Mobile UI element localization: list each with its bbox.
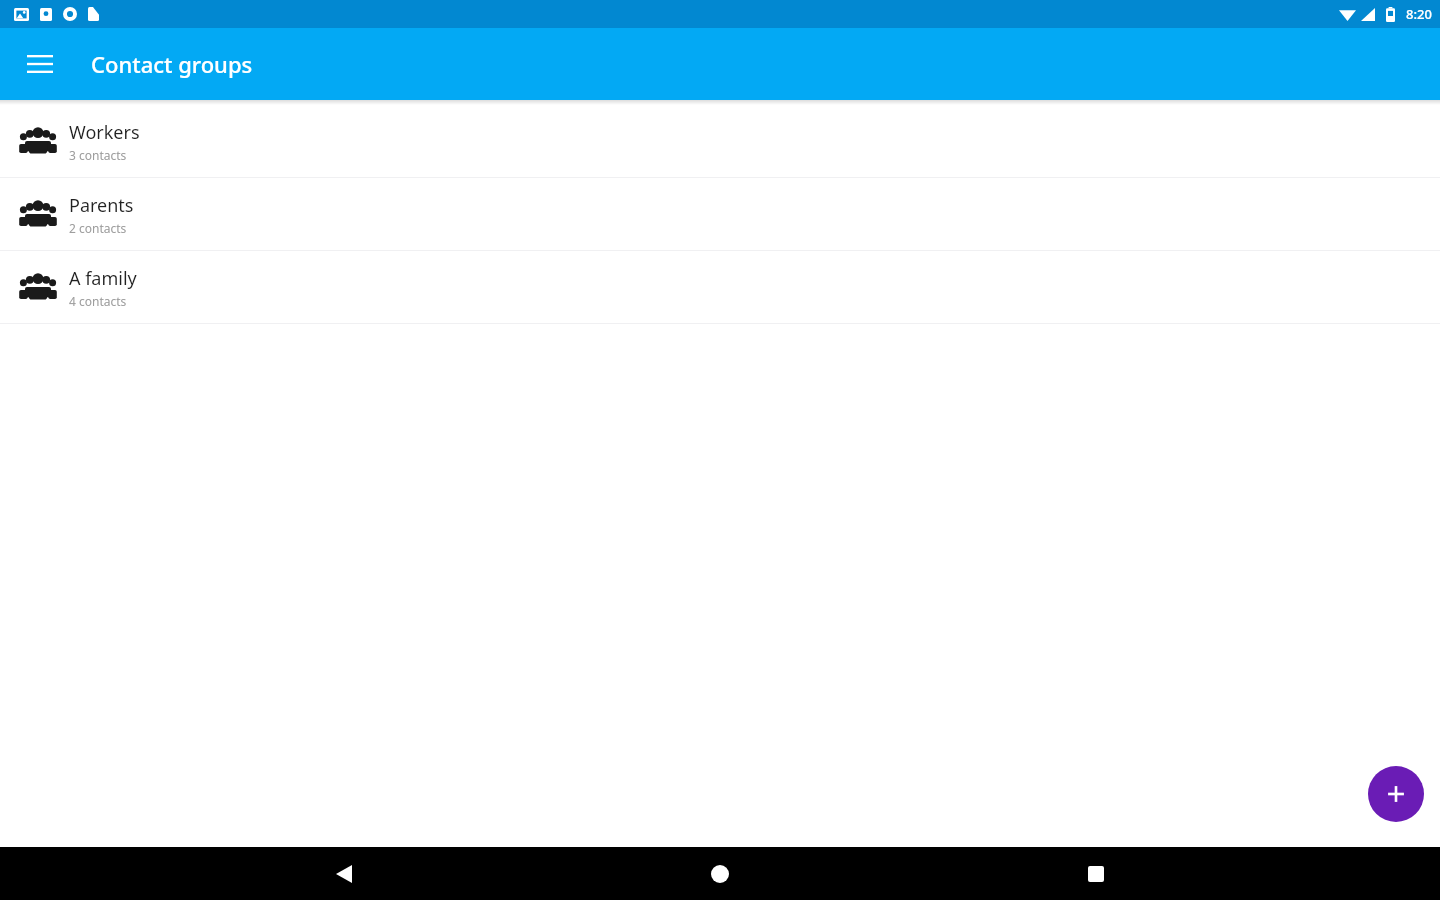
button[interactable]: Back	[312, 847, 376, 900]
staticText: 3 contacts	[69, 147, 127, 163]
button[interactable]: Open navigation menu	[16, 40, 64, 88]
staticText: A family	[69, 266, 137, 291]
button[interactable]: Workers	[0, 105, 1440, 177]
staticText: Contact groups	[91, 49, 253, 79]
staticText: 2 contacts	[69, 220, 127, 236]
staticText: 4 contacts	[69, 293, 127, 309]
button[interactable]: Home	[688, 847, 752, 900]
staticText: 8:20	[1406, 5, 1432, 23]
staticText: Parents	[69, 193, 134, 218]
button[interactable]: A family	[0, 251, 1440, 323]
button[interactable]: Add group	[1368, 766, 1424, 822]
button[interactable]: Recent apps	[1064, 847, 1128, 900]
button[interactable]: Parents	[0, 178, 1440, 250]
staticText: Workers	[69, 120, 140, 145]
